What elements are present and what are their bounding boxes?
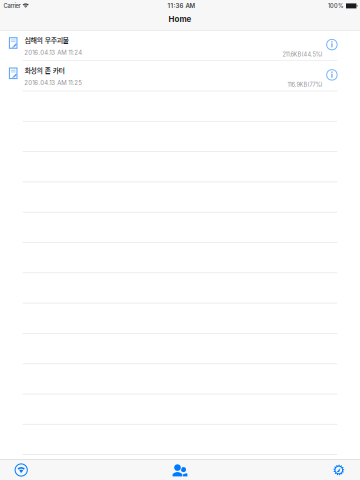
staticText: 2016.04.13 AM 11:25 [24, 79, 82, 87]
button[interactable]: Settings [318, 460, 360, 480]
button[interactable]: Network [0, 460, 42, 480]
staticText: 2016.04.13 AM 11:24 [24, 49, 82, 56]
staticText: 100% [328, 2, 344, 9]
staticText: 11:36 AM [167, 2, 195, 9]
button[interactable]: Contacts [159, 460, 201, 480]
staticText: 화성의 존 카터 [24, 65, 64, 75]
button[interactable]: 화성의 존 카터 [0, 61, 360, 91]
staticText: Home [168, 14, 191, 24]
staticText: 심해의 우주괴물 [24, 35, 68, 45]
button[interactable]: 심해의 우주괴물 [0, 31, 360, 61]
staticText: Carrier [3, 2, 20, 9]
staticText: 211.6KB(44.5%) [282, 51, 322, 58]
staticText: 116.9KB(77%) [287, 81, 322, 88]
